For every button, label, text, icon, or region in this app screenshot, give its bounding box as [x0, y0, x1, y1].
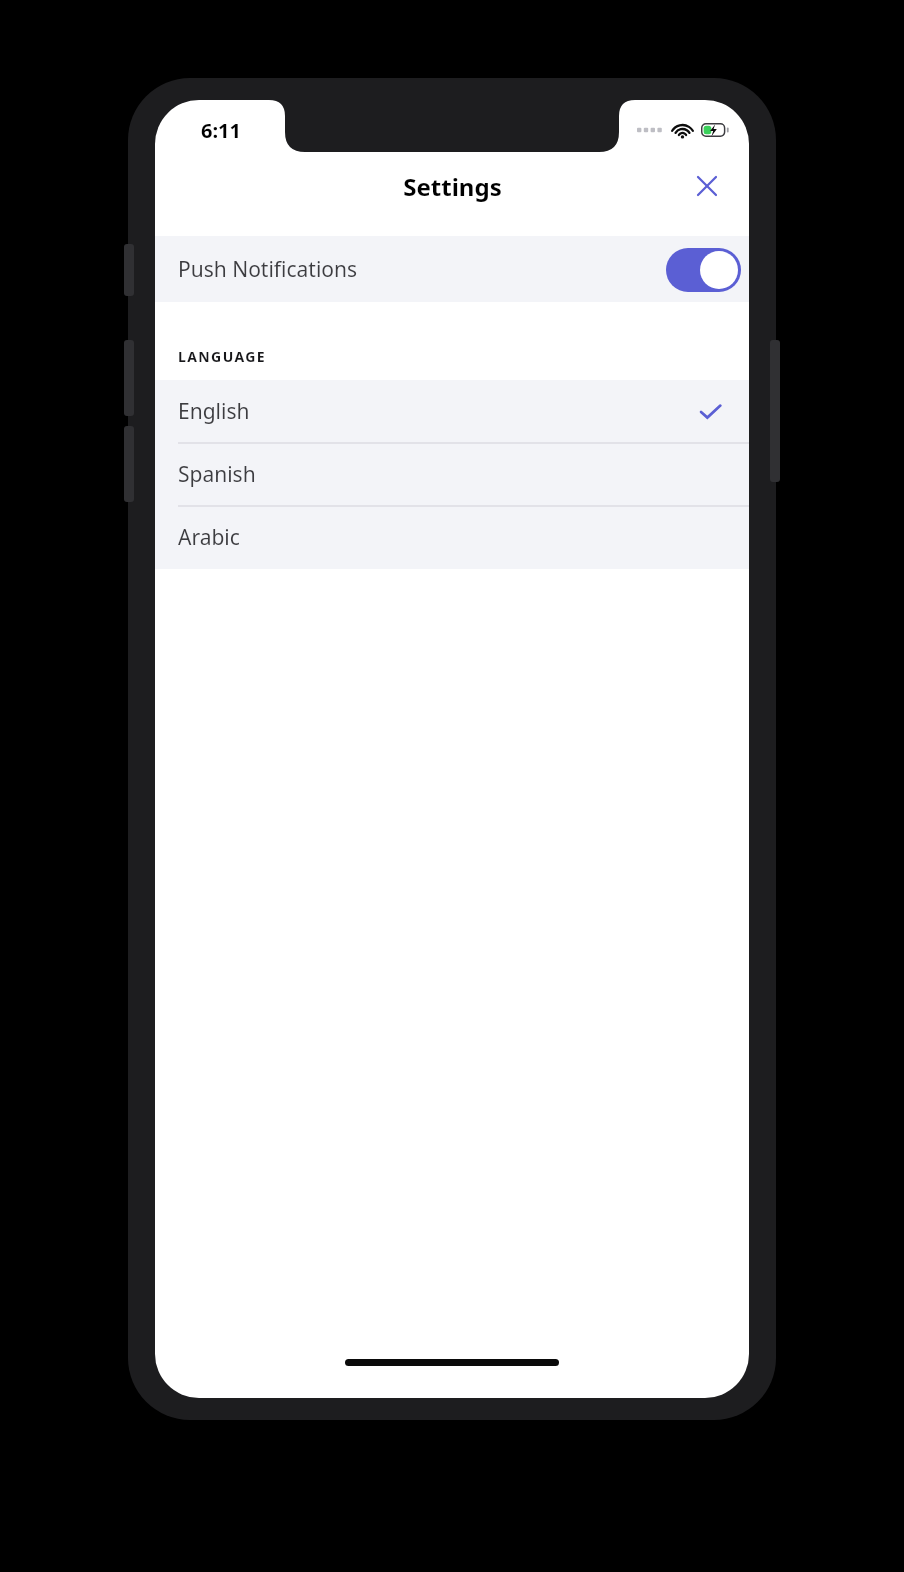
button[interactable]: English	[155, 380, 749, 443]
button[interactable]: Spanish	[155, 443, 749, 506]
staticText: Settings	[403, 170, 502, 203]
staticText: Push Notifications	[178, 255, 358, 284]
staticText: 6:11	[201, 117, 241, 144]
staticText: English	[178, 397, 250, 426]
button[interactable]: Push Notifications	[155, 236, 749, 302]
staticText: LANGUAGE	[178, 347, 267, 366]
button[interactable]: Arabic	[155, 506, 749, 569]
staticText: Spanish	[178, 460, 256, 489]
staticText: Arabic	[178, 523, 240, 552]
button[interactable]: Push Notifications, on	[666, 247, 742, 292]
button[interactable]: Close	[685, 164, 729, 208]
